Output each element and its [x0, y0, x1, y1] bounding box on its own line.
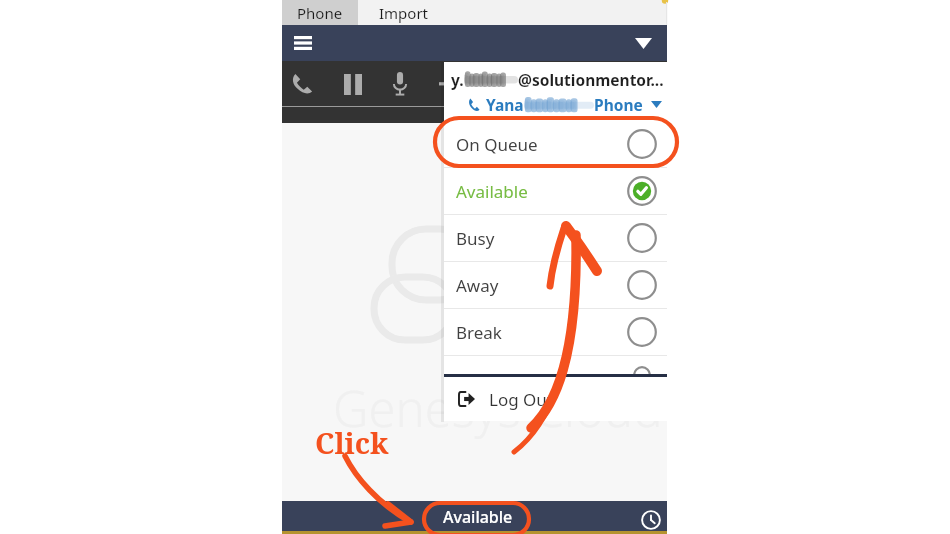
button[interactable]: Mute [383, 67, 417, 101]
staticText: Genesys Cloud [333, 375, 663, 442]
button[interactable]: Expand menu [631, 31, 655, 55]
button[interactable]: Phone [282, 0, 358, 25]
staticText: Click [315, 423, 389, 462]
button[interactable] [444, 356, 667, 374]
button[interactable]: History [636, 505, 666, 534]
staticText: Phone [297, 3, 343, 23]
staticText: y. [451, 69, 464, 90]
staticText: On Queue [456, 133, 538, 156]
staticText: Yana [486, 94, 524, 115]
button[interactable]: Menu [288, 28, 318, 58]
staticText: Available [456, 180, 528, 203]
button[interactable]: Available [425, 501, 531, 531]
button[interactable]: On Queue [444, 121, 667, 167]
button[interactable]: Hold [336, 67, 370, 101]
button[interactable]: Log Out [444, 377, 667, 421]
staticText: @solutionmentor... [518, 69, 664, 90]
staticText: Log Out [489, 388, 553, 411]
button[interactable]: Away [444, 262, 667, 308]
staticText: Phone [594, 94, 643, 115]
staticText: Available [443, 506, 513, 526]
staticText: Away [456, 274, 499, 297]
button[interactable]: Break [444, 309, 667, 355]
button[interactable]: Import [358, 0, 450, 25]
staticText: Busy [456, 227, 495, 250]
button[interactable]: Available [444, 168, 667, 214]
button[interactable]: More [430, 67, 464, 101]
staticText: Import [379, 3, 429, 23]
staticText: Break [456, 321, 502, 344]
button[interactable]: Busy [444, 215, 667, 261]
button[interactable]: Call [285, 67, 319, 101]
